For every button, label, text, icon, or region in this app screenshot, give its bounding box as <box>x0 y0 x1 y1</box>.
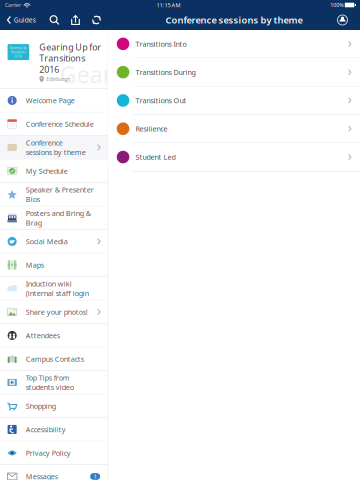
staticText: for <box>60 84 91 115</box>
button[interactable]: Search <box>44 10 65 30</box>
staticText: Transitions Out <box>136 95 187 105</box>
button[interactable]: Accessibility <box>0 418 108 441</box>
staticText: Induction wiki <box>26 279 72 289</box>
button[interactable]: Resilience <box>108 115 360 143</box>
staticText: 11:15 AM <box>156 1 180 9</box>
button[interactable]: Share your photos! <box>0 300 108 324</box>
staticText: Gearing Up <box>10 46 27 50</box>
staticText: sessions by theme <box>26 147 86 157</box>
staticText: Bios <box>26 194 40 204</box>
staticText: Gearing <box>60 59 146 90</box>
staticText: Resilience <box>136 124 168 134</box>
staticText: Gearing Up for <box>39 41 101 53</box>
staticText: Edinburgh <box>46 76 70 82</box>
button[interactable]: Transitions Out <box>108 87 360 115</box>
button[interactable]: Top Tips from <box>0 371 108 394</box>
staticText: Speaker & Presenter <box>26 185 94 195</box>
staticText: Transitions During <box>136 67 196 77</box>
staticText: Top Tips from <box>26 373 70 383</box>
button[interactable]: Shopping <box>0 394 108 418</box>
button[interactable]: Refresh <box>86 10 107 30</box>
staticText: Maps <box>26 260 44 270</box>
staticText: Transitions <box>11 50 26 54</box>
staticText: Student Led <box>136 152 176 162</box>
staticText: Conference <box>26 138 63 148</box>
staticText: Guides <box>14 15 36 25</box>
button[interactable]: Conference Schedule <box>0 112 108 136</box>
button[interactable]: Speaker & Presenter <box>0 183 108 206</box>
button[interactable]: Campus Contacts <box>0 347 108 371</box>
button[interactable]: My Schedule <box>0 159 108 183</box>
staticText: Conference Schedule <box>26 119 94 129</box>
button[interactable]: Share <box>65 10 86 30</box>
button[interactable]: Attendees <box>0 324 108 347</box>
staticText: students video <box>26 382 74 392</box>
button[interactable]: Social Media <box>0 230 108 253</box>
button[interactable]: Conference <box>0 136 108 159</box>
button[interactable]: Account <box>337 14 348 25</box>
button[interactable]: Induction wiki <box>0 277 108 300</box>
staticText: Brag <box>26 218 42 227</box>
button[interactable]: Welcome Page <box>0 89 108 112</box>
staticText: My Schedule <box>26 166 68 176</box>
button[interactable]: Transitions During <box>108 58 360 87</box>
staticText: Share your photos! <box>26 307 88 317</box>
button[interactable]: Student Led <box>108 143 360 171</box>
staticText: 2016 <box>39 63 59 75</box>
button[interactable]: Posters and Bring & <box>0 206 108 230</box>
staticText: Accessibility <box>26 424 66 434</box>
button[interactable]: Transitions Into <box>108 30 360 58</box>
staticText: Messages <box>26 471 58 480</box>
staticText: Attendees <box>26 330 60 340</box>
staticText: Welcome Page <box>26 95 75 105</box>
staticText: Conference sessions by theme <box>165 14 302 26</box>
staticText: (internal staff login <box>26 288 89 298</box>
staticText: Shopping <box>26 401 56 411</box>
staticText: 100% <box>330 1 343 9</box>
button[interactable]: Privacy Policy <box>0 441 108 465</box>
staticText: Privacy Policy <box>26 448 71 458</box>
staticText: Transitions <box>39 52 85 64</box>
staticText: Carrier <box>5 1 21 8</box>
button[interactable]: Gearing <box>0 30 108 89</box>
button[interactable]: Maps <box>0 253 108 277</box>
button[interactable]: Guides <box>0 15 36 25</box>
staticText: Social Media <box>26 236 68 246</box>
staticText: 2016 <box>14 54 22 58</box>
staticText: Posters and Bring & <box>26 208 91 218</box>
staticText: Transitions Into <box>136 39 187 49</box>
button[interactable]: Messages <box>0 465 108 480</box>
staticText: Campus Contacts <box>26 354 84 364</box>
staticText: 1 <box>94 473 97 480</box>
